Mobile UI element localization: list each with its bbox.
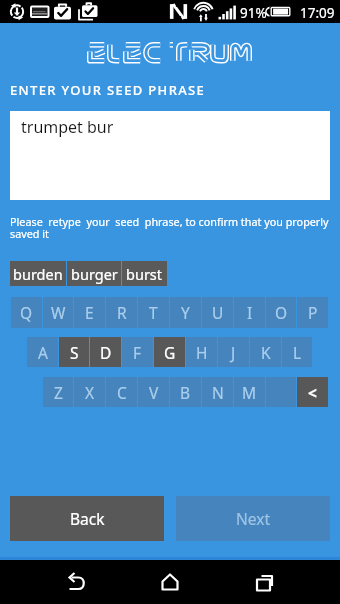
button[interactable]: burden <box>10 261 66 286</box>
staticText: S <box>70 342 79 363</box>
staticText: K <box>261 342 271 363</box>
staticText: Q <box>20 302 33 323</box>
staticText: Z <box>54 382 63 403</box>
button[interactable]: M <box>234 377 265 407</box>
staticText: burger <box>71 264 118 284</box>
button[interactable]: O <box>266 297 296 328</box>
staticText: N <box>212 382 224 403</box>
staticText: burst <box>126 264 163 284</box>
button[interactable]: B <box>170 377 201 407</box>
staticText: G <box>164 342 176 363</box>
staticText: X <box>85 382 95 403</box>
staticText: J <box>231 342 236 363</box>
button[interactable]: J <box>218 337 249 367</box>
button[interactable]: H <box>186 337 217 367</box>
button[interactable]: W <box>43 297 73 328</box>
staticText: F <box>133 342 142 363</box>
button[interactable]: Q <box>11 297 42 328</box>
button[interactable]: A <box>27 337 58 367</box>
button[interactable]: Backspace <box>297 377 328 407</box>
button[interactable]: Back <box>10 496 164 541</box>
button[interactable]: burst <box>122 261 167 286</box>
staticText: H <box>196 342 208 363</box>
button[interactable]: X <box>74 377 105 407</box>
staticText: ENTER YOUR SEED PHRASE <box>10 81 206 99</box>
button[interactable]: burger <box>67 261 121 286</box>
staticText: E <box>85 302 94 323</box>
button[interactable]: E <box>74 297 105 328</box>
staticText: I <box>247 302 253 323</box>
staticText: trumpet bur <box>21 116 114 138</box>
button[interactable]: U <box>202 297 233 328</box>
button[interactable]: Back <box>47 560 107 604</box>
staticText: B <box>180 382 191 403</box>
staticText: C <box>117 382 127 403</box>
staticText: burden <box>13 264 63 284</box>
button[interactable]: V <box>138 377 169 407</box>
staticText: V <box>149 382 159 403</box>
button[interactable]: I <box>234 297 265 328</box>
button[interactable]: Y <box>170 297 201 328</box>
staticText: A <box>38 342 48 363</box>
staticText: 91% <box>240 4 267 22</box>
button[interactable]: R <box>106 297 137 328</box>
button[interactable]: trumpet bur <box>10 111 330 200</box>
staticText: L <box>293 342 302 363</box>
button[interactable]: C <box>106 377 137 407</box>
button[interactable]: Home <box>140 560 200 604</box>
button[interactable]: Z <box>43 377 73 407</box>
staticText: T <box>149 302 158 323</box>
staticText: O <box>275 302 288 323</box>
staticText: W <box>51 302 66 323</box>
staticText: D <box>100 342 112 363</box>
staticText: P <box>308 302 318 323</box>
button[interactable]: Next <box>176 496 330 541</box>
staticText: U <box>212 302 224 323</box>
button[interactable]: G <box>154 337 185 367</box>
button[interactable]: N <box>202 377 233 407</box>
staticText: < <box>308 382 317 403</box>
staticText: 17:09 <box>300 4 335 22</box>
button[interactable]: T <box>138 297 169 328</box>
button[interactable]: S <box>59 337 89 367</box>
staticText: Back <box>70 508 105 529</box>
button[interactable]: P <box>297 297 328 328</box>
staticText: Y <box>181 302 190 323</box>
button[interactable]: D <box>90 337 121 367</box>
button[interactable]: F <box>122 337 153 367</box>
staticText: M <box>242 382 257 403</box>
button[interactable]: L <box>282 337 312 367</box>
staticText: R <box>117 302 127 323</box>
button[interactable]: Recent apps <box>235 560 295 604</box>
button[interactable]: K <box>250 337 281 367</box>
staticText: Please retype your seed phrase, to confi… <box>10 214 329 241</box>
staticText: Next <box>236 508 271 529</box>
